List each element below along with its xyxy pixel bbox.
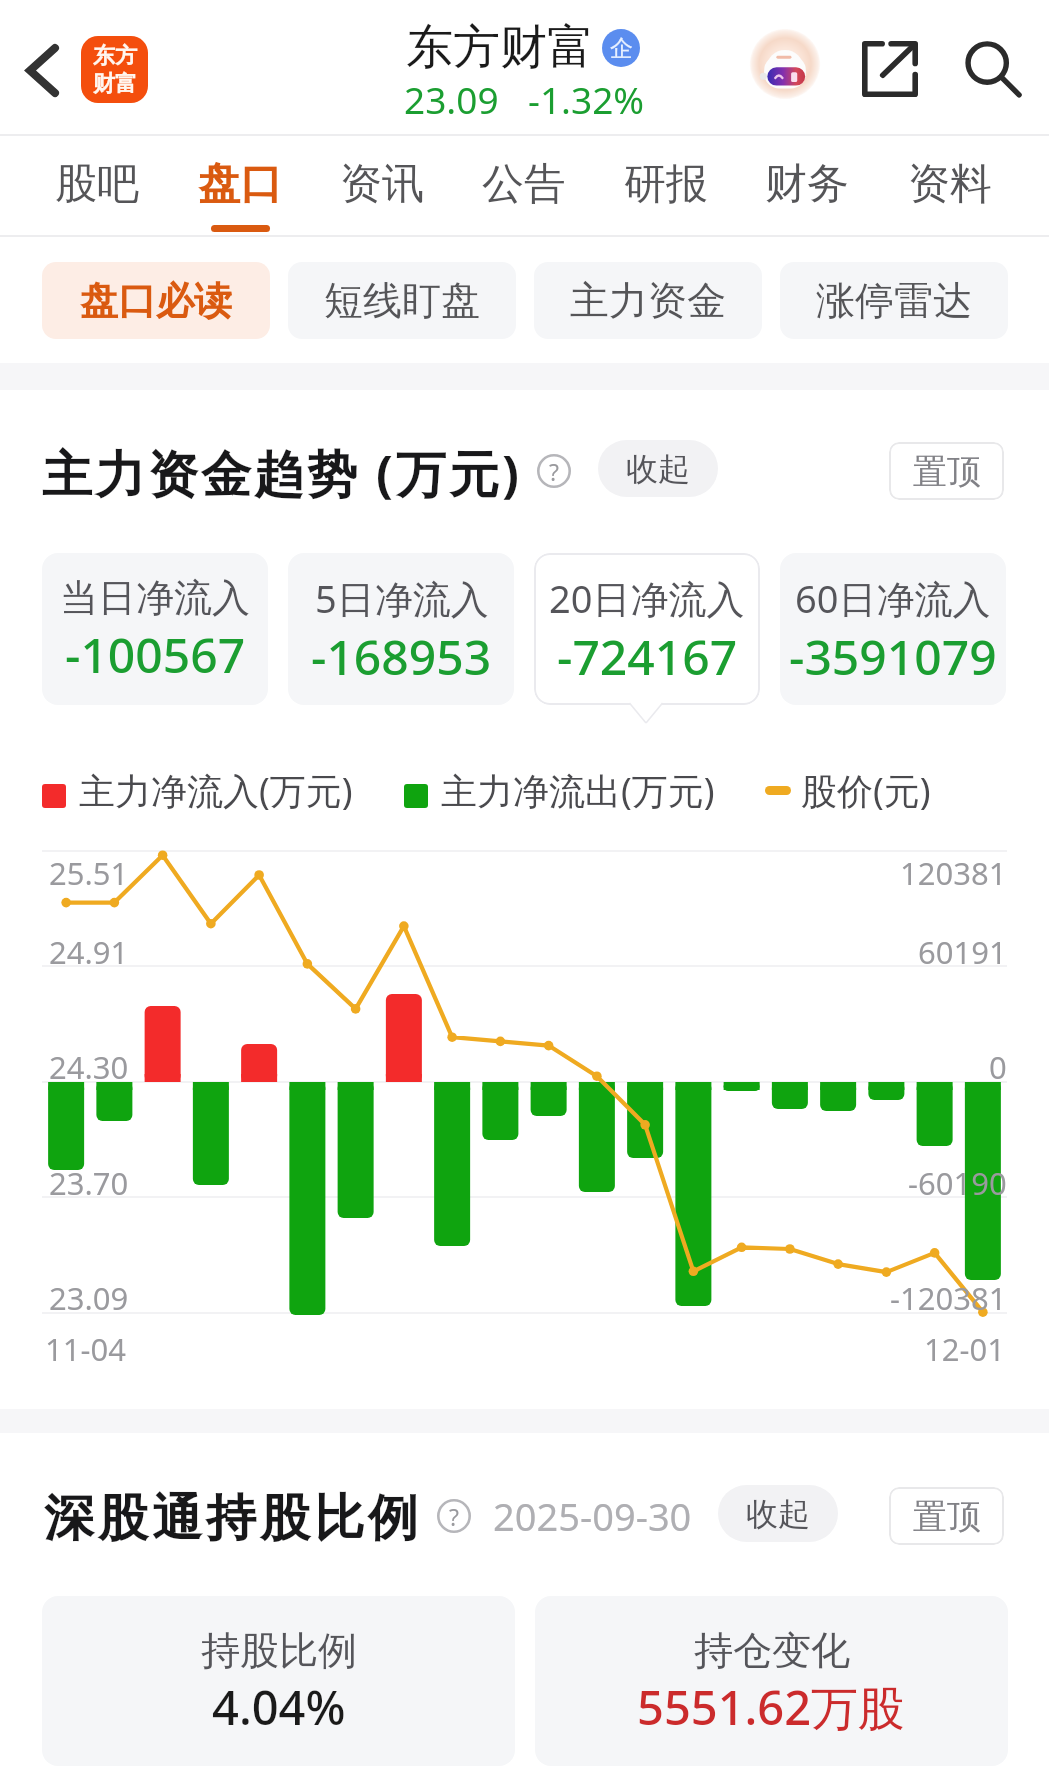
staticText: 60191 [918,931,1007,973]
staticText: 收起 [746,1494,810,1534]
staticText: 24.91 [49,931,129,973]
button[interactable]: 20日净流入 [534,553,760,705]
staticText: 东方财富 [406,18,594,77]
staticText: 公告 [482,158,566,211]
staticText: -120381 [890,1277,1007,1319]
staticText: 当日净流入 [60,574,250,622]
staticText: 企 [610,34,633,63]
staticText: -1.32% [528,74,645,124]
staticText: 23.09 [49,1277,129,1319]
staticText: 短线盯盘 [324,276,480,325]
button[interactable]: Back [0,18,84,123]
staticText: 东方 [93,42,137,70]
staticText: 4.04% [212,1675,346,1739]
staticText: -724167 [557,624,738,689]
button[interactable]: Share [847,26,933,112]
staticText: 2025-09-30 [493,1490,692,1542]
button[interactable]: 公告 [460,136,588,235]
button[interactable]: 收起 [718,1485,838,1542]
staticText: 收起 [626,449,690,489]
button[interactable]: 持仓变化 [535,1596,1008,1766]
staticText: 0 [989,1046,1007,1088]
button[interactable]: 盘口必读 [42,262,270,339]
button[interactable]: 主力资金趋势 (万元) [42,439,522,507]
staticText: -168953 [311,624,492,689]
button[interactable]: East Money [81,36,148,103]
staticText: 财富 [93,70,137,98]
staticText: 20日净流入 [549,572,745,624]
button[interactable]: 股吧 [33,136,161,235]
staticText: 主力净流出(万元) [441,766,715,815]
button[interactable]: 资料 [886,136,1014,235]
staticText: 持股比例 [201,1626,357,1675]
staticText: 11-04 [45,1328,126,1370]
button[interactable]: 收起 [598,440,718,497]
button[interactable]: 置顶 [889,442,1004,500]
button[interactable]: 60日净流入 [780,553,1006,705]
staticText: 主力资金趋势 (万元) [42,439,522,507]
button[interactable]: 5日净流入 [288,553,514,705]
staticText: 23.09 [404,74,499,124]
staticText: 资料 [908,158,992,211]
staticText: 12-01 [924,1328,1005,1370]
staticText: 股价(元) [801,766,931,815]
staticText: 24.30 [49,1046,129,1088]
button[interactable]: 深股通持股比例 [42,1487,420,1550]
staticText: 60日净流入 [795,572,991,624]
button[interactable]: 研报 [602,136,730,235]
staticText: 23.70 [49,1162,129,1204]
staticText: 120381 [900,852,1007,894]
staticText: 5日净流入 [315,572,489,624]
staticText: 置顶 [913,1495,981,1538]
staticText: 研报 [624,158,708,211]
staticText: 主力资金 [570,276,726,325]
staticText: 资讯 [340,158,424,211]
button[interactable]: 资讯 [318,136,446,235]
staticText: -100567 [65,622,246,687]
staticText: ? [549,456,559,487]
button[interactable]: AI assistant [742,21,828,107]
button[interactable]: 当日净流入 [42,553,268,705]
staticText: 涨停雷达 [816,276,972,325]
staticText: 主力净流入(万元) [79,766,353,815]
button[interactable]: 涨停雷达 [780,262,1008,339]
staticText: 盘口必读 [80,277,232,325]
button[interactable]: 短线盯盘 [288,262,516,339]
staticText: 5551.62万股 [637,1675,906,1739]
button[interactable]: 置顶 [889,1487,1004,1545]
button[interactable]: 主力资金 [534,262,762,339]
button[interactable]: 盘口 [176,136,304,235]
staticText: -60190 [908,1162,1007,1204]
staticText: 财务 [765,158,849,211]
staticText: 盘口 [198,158,282,211]
staticText: ? [449,1501,459,1532]
button[interactable]: Help [537,454,571,488]
staticText: 25.51 [49,852,129,894]
staticText: 深股通持股比例 [42,1487,420,1550]
button[interactable]: 持股比例 [42,1596,515,1766]
staticText: 持仓变化 [694,1626,850,1675]
staticText: 置顶 [913,450,981,493]
button[interactable]: Search [950,27,1036,113]
button[interactable]: Help [437,1499,471,1533]
staticText: -3591079 [789,624,997,689]
button[interactable]: 财务 [743,136,871,235]
staticText: 股吧 [55,158,139,211]
